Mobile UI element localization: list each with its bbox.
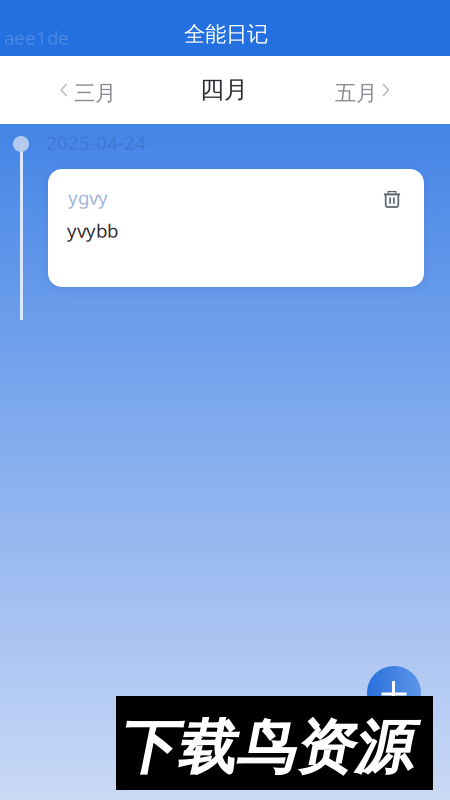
staticText: 下载鸟资源 [117,712,412,784]
staticText: 三月 [74,80,116,106]
staticText: 四月 [200,75,248,104]
staticText: aee1de [4,25,69,50]
staticText: 2025-04-24 [46,130,146,155]
staticText: yvybb [67,218,118,243]
staticText: 全能日记 [184,21,268,47]
staticText: 五月 [335,80,377,106]
button[interactable]: 五月 [334,59,450,119]
button[interactable]: Add entry [367,666,421,720]
staticText: ygvy [68,185,108,210]
button[interactable]: 四月 [178,59,268,119]
button[interactable]: Delete entry [374,181,410,217]
button[interactable]: 三月 [59,59,179,119]
